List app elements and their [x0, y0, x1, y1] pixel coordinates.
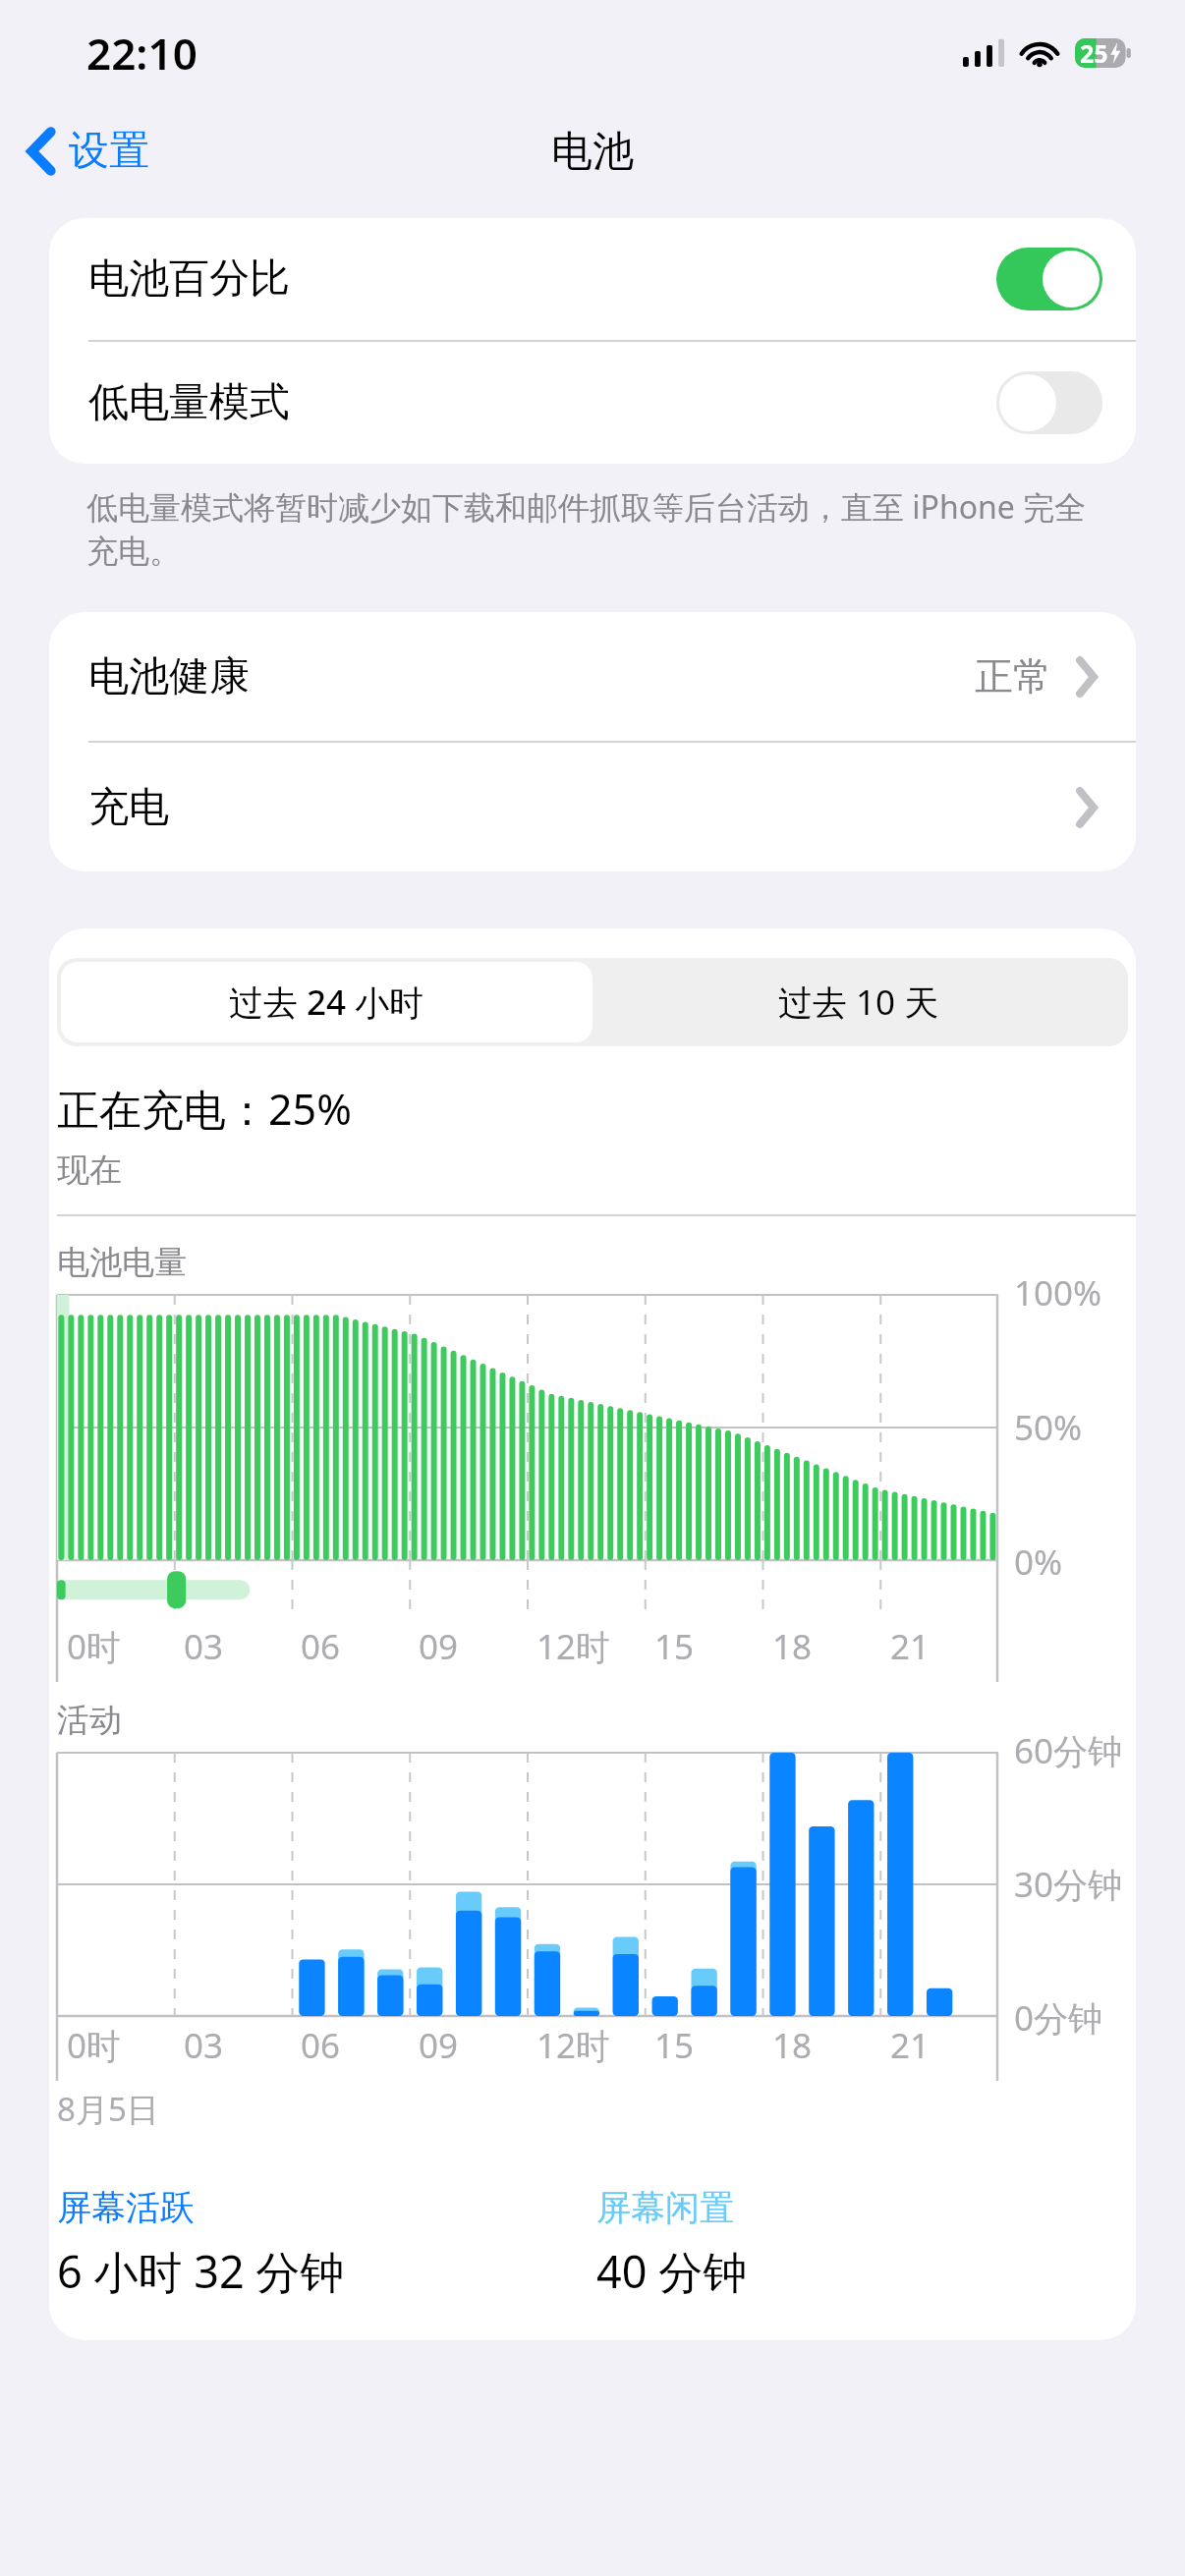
staticText: 06 — [301, 2022, 341, 2069]
staticText: 25 — [1080, 36, 1108, 70]
staticText: 09 — [419, 1623, 459, 1670]
staticText: 50% — [1014, 1404, 1083, 1451]
button[interactable]: 过去 10 天 — [592, 962, 1124, 1042]
staticText: 0时 — [67, 1623, 122, 1670]
staticText: 8月5日 — [57, 2087, 159, 2131]
staticText: 正在充电：25% — [57, 1080, 352, 1138]
staticText: 0% — [1014, 1539, 1063, 1586]
staticText: 0时 — [67, 2022, 122, 2069]
button[interactable]: 充电 — [49, 743, 1136, 871]
staticText: 15 — [654, 1623, 695, 1670]
staticText: 60分钟 — [1014, 1727, 1123, 1774]
staticText: 12时 — [536, 2022, 611, 2069]
staticText: 100% — [1014, 1269, 1102, 1316]
button[interactable]: 电池健康 — [49, 612, 1136, 741]
staticText: 06 — [301, 1623, 341, 1670]
staticText: 屏幕闲置 — [596, 2186, 734, 2229]
staticText: 充电 — [88, 782, 169, 833]
staticText: 0分钟 — [1014, 1994, 1103, 2042]
staticText: 活动 — [57, 1700, 122, 1741]
staticText: 18 — [772, 1623, 813, 1670]
staticText: 6 小时 32 分钟 — [57, 2241, 345, 2301]
staticText: 03 — [184, 1623, 224, 1670]
staticText: 03 — [184, 2022, 224, 2069]
staticText: 低电量模式 — [88, 377, 290, 428]
staticText: 40 分钟 — [596, 2241, 748, 2301]
button[interactable]: 设置 — [0, 96, 169, 206]
staticText: 21 — [890, 2022, 931, 2069]
staticText: 电池 — [551, 126, 634, 178]
staticText: 09 — [419, 2022, 459, 2069]
staticText: 电池电量 — [57, 1242, 187, 1283]
staticText: 22:10 — [86, 24, 197, 83]
staticText: 屏幕活跃 — [57, 2186, 195, 2229]
button[interactable]: 低电量模式 — [49, 342, 1136, 464]
staticText: 设置 — [69, 126, 149, 177]
staticText: 现在 — [57, 1149, 122, 1191]
staticText: 18 — [772, 2022, 813, 2069]
button[interactable]: 过去 24 小时 — [61, 962, 592, 1042]
staticText: 15 — [654, 2022, 695, 2069]
staticText: 12时 — [536, 1623, 611, 1670]
staticText: 30分钟 — [1014, 1861, 1123, 1908]
staticText: 电池健康 — [88, 651, 250, 702]
staticText: 21 — [890, 1623, 931, 1670]
staticText: 过去 24 小时 — [229, 979, 424, 1026]
staticText: 过去 10 天 — [778, 979, 939, 1026]
staticText: 低电量模式将暂时减少如下载和邮件抓取等后台活动，直至 iPhone 完全充电。 — [86, 485, 1099, 571]
staticText: 电池百分比 — [88, 253, 290, 305]
staticText: 正常 — [975, 652, 1051, 700]
button[interactable]: 电池百分比 — [49, 218, 1136, 340]
